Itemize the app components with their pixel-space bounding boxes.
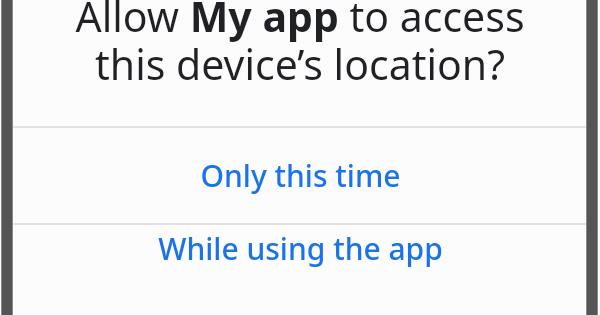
staticText: While using the app <box>158 228 443 269</box>
other: Device left edge <box>0 0 13 315</box>
other: Device right edge <box>586 0 600 315</box>
staticText: Allow My app to access this device’s loc… <box>40 0 560 92</box>
button[interactable]: Only this time <box>0 128 600 223</box>
button[interactable]: While using the app <box>0 225 600 315</box>
staticText: Only this time <box>200 155 401 196</box>
